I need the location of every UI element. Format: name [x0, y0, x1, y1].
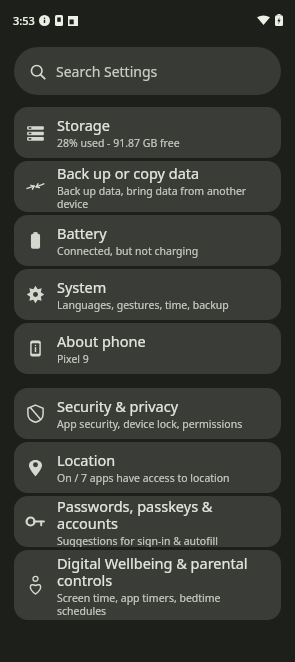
staticText: Languages, gestures, time, backup	[57, 298, 229, 312]
staticText: On / 7 apps have access to location	[57, 471, 230, 485]
button[interactable]: Location	[14, 442, 281, 493]
button[interactable]: System	[14, 269, 281, 320]
staticText: Connected, but not charging	[57, 244, 199, 258]
staticText: 3:53	[13, 13, 35, 28]
staticText: Search Settings	[56, 62, 158, 81]
staticText: Storage	[57, 115, 110, 135]
button[interactable]: Passwords, passkeys & accounts	[14, 496, 281, 547]
staticText: Back up data, bring data from another de…	[57, 184, 271, 211]
staticText: App security, device lock, permissions	[57, 417, 243, 431]
staticText: Location	[57, 450, 116, 470]
button[interactable]: Security & privacy	[14, 388, 281, 439]
staticText: Battery	[57, 223, 107, 243]
staticText: Suggestions for sign-in & autofill	[57, 534, 218, 547]
staticText: Back up or copy data	[57, 163, 200, 183]
button[interactable]: About phone	[14, 323, 281, 374]
staticText: Security & privacy	[57, 396, 179, 416]
button[interactable]: Battery	[14, 215, 281, 266]
staticText: System	[57, 277, 107, 297]
staticText: About phone	[57, 331, 146, 351]
staticText: 28% used - 91.87 GB free	[57, 136, 180, 150]
button[interactable]: Storage	[14, 107, 281, 158]
button[interactable]: Back up or copy data	[14, 161, 281, 212]
button[interactable]: Digital Wellbeing & parental controls	[14, 550, 281, 620]
staticText: Screen time, app timers, bedtime schedul…	[57, 591, 271, 618]
button[interactable]: Search Settings	[14, 47, 281, 95]
staticText: Digital Wellbeing & parental controls	[57, 553, 271, 590]
staticText: Passwords, passkeys & accounts	[57, 496, 271, 533]
staticText: Pixel 9	[57, 352, 89, 366]
